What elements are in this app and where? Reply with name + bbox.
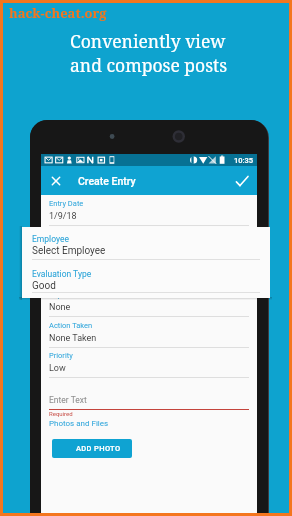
staticText: Employee	[49, 229, 82, 238]
staticText: Priority	[49, 351, 73, 360]
staticText: ADD PHOTO	[76, 444, 121, 453]
staticText: Conveniently view	[70, 29, 226, 53]
staticText: Evaluation Type	[32, 269, 92, 279]
button[interactable]: Topic	[49, 290, 249, 317]
staticText: 1/9/18	[49, 211, 77, 222]
staticText: Action Taken	[49, 321, 93, 330]
staticText: Low	[49, 363, 66, 374]
staticText: Employee	[32, 234, 69, 244]
staticText: hack-cheat.org	[9, 4, 107, 22]
button[interactable]: Save entry	[233, 172, 251, 190]
button[interactable]: Photos and Files	[49, 419, 109, 428]
staticText: Create Entry	[78, 175, 136, 187]
staticText: Good	[49, 272, 71, 283]
staticText: None	[49, 302, 71, 313]
button[interactable]: Evaluation Type	[32, 269, 260, 293]
staticText: and compose posts	[70, 53, 228, 77]
staticText: Select Employee	[49, 241, 116, 252]
button[interactable]: Close	[47, 172, 65, 190]
staticText: 10:35	[234, 156, 254, 165]
staticText: Select Employee	[32, 245, 106, 257]
button[interactable]: Employee	[32, 234, 260, 260]
button[interactable]: Evaluation Type	[49, 260, 249, 287]
staticText: Good	[32, 280, 56, 292]
button[interactable]: Action Taken	[49, 321, 249, 348]
button[interactable]: Entry Date	[49, 199, 249, 226]
staticText: Topic	[49, 290, 68, 299]
staticText: Entry Date	[49, 199, 84, 208]
staticText: Enter Text	[49, 395, 87, 405]
button[interactable]: Priority	[49, 351, 249, 378]
staticText: None Taken	[49, 333, 97, 344]
button[interactable]: ADD PHOTO	[52, 439, 132, 458]
staticText: Required	[49, 410, 73, 417]
button[interactable]: Employee	[49, 229, 249, 256]
